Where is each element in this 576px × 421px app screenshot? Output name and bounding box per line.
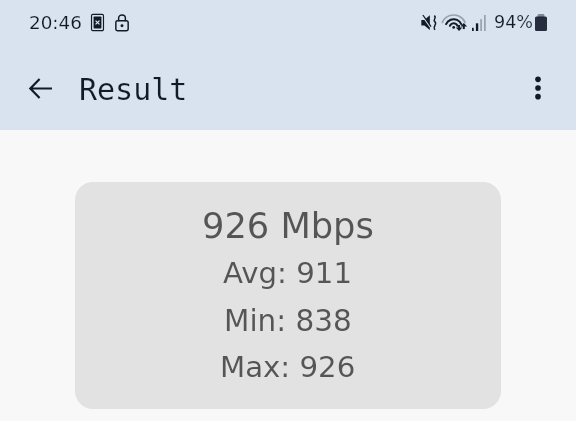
staticText: 20:46 [29,12,82,33]
staticText: Min: 838 [224,304,352,338]
button[interactable]: 926 Mbps [75,182,501,409]
staticText: Result [79,72,188,107]
staticText: 94% [494,12,534,32]
staticText: Avg: 911 [223,256,353,290]
staticText: 926 Mbps [202,205,374,246]
staticText: Max: 926 [220,350,356,384]
button[interactable]: Back [16,64,64,112]
button[interactable]: More options [514,64,562,112]
